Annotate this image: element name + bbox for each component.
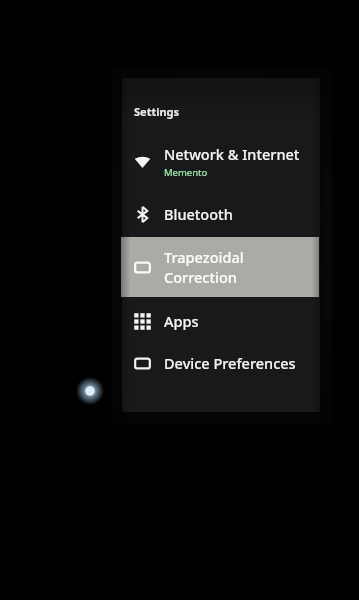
button[interactable]: Device Preferences bbox=[122, 347, 320, 379]
staticText: Trapezoidal bbox=[164, 247, 244, 267]
button[interactable]: Trapezoidal bbox=[121, 237, 319, 297]
staticText: Network & Internet bbox=[164, 144, 300, 164]
staticText: Memento bbox=[164, 166, 208, 179]
button[interactable]: Network & Internet bbox=[122, 139, 320, 183]
staticText: Correction bbox=[164, 267, 237, 287]
staticText: Bluetooth bbox=[164, 204, 233, 224]
staticText: Settings bbox=[134, 104, 180, 119]
button[interactable]: Bluetooth bbox=[122, 197, 320, 231]
other: Status indicator bbox=[76, 377, 104, 405]
button[interactable]: Apps bbox=[122, 305, 320, 337]
staticText: Apps bbox=[164, 311, 199, 331]
staticText: Device Preferences bbox=[164, 353, 296, 373]
